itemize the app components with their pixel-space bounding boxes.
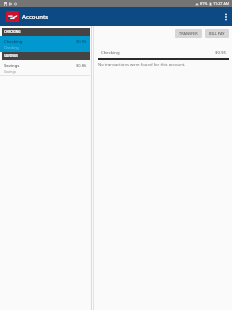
staticText: CHECKING xyxy=(4,30,21,34)
staticText: BILL PAY xyxy=(209,31,225,36)
staticText: 11:27 AM xyxy=(213,1,230,6)
button[interactable]: More options xyxy=(220,7,232,26)
staticText: $0.86 xyxy=(76,63,87,68)
staticText: Savings xyxy=(4,63,20,69)
staticText: Accounts xyxy=(22,13,49,21)
button[interactable]: Savings xyxy=(0,60,90,76)
staticText: Savings xyxy=(4,69,17,74)
staticText: $0.93 xyxy=(76,39,87,44)
staticText: 81% xyxy=(200,1,208,6)
button[interactable]: Checking xyxy=(0,36,90,52)
button[interactable]: TRANSFER xyxy=(175,29,202,38)
staticText: SAVINGS xyxy=(4,54,18,58)
staticText: Checking xyxy=(4,45,19,50)
staticText: No transactions were found for this acco… xyxy=(98,62,186,68)
button[interactable]: BILL PAY xyxy=(205,29,229,38)
staticText: Checking xyxy=(4,39,23,45)
staticText: TRANSFER xyxy=(179,31,198,36)
staticText: Checking xyxy=(101,49,120,55)
staticText: $0.95 xyxy=(215,49,226,55)
